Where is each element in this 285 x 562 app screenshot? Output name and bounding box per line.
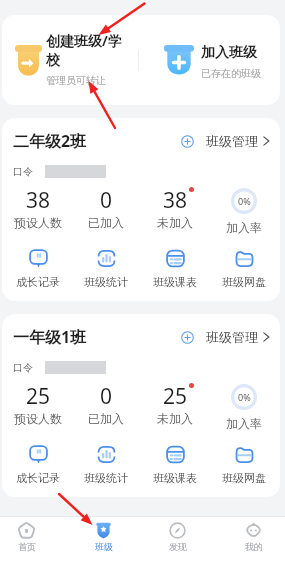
staticText: 班级统计 xyxy=(84,275,128,289)
staticText: 已加入 xyxy=(88,411,124,426)
staticText: 班级管理 xyxy=(206,329,258,345)
button[interactable]: 创建班级/学校 xyxy=(2,15,138,105)
button[interactable]: 首页 xyxy=(0,517,56,562)
staticText: 班级管理 xyxy=(206,133,258,149)
staticText: 加入率 xyxy=(226,416,262,431)
staticText: 口令 xyxy=(13,165,33,178)
staticText: 未加入 xyxy=(157,215,193,230)
staticText: 0 xyxy=(100,382,113,411)
staticText: 38 xyxy=(26,186,51,215)
staticText: 预设人数 xyxy=(14,215,62,230)
staticText: 加入率 xyxy=(226,220,262,235)
button[interactable]: 班级课表 xyxy=(140,444,209,485)
staticText: 38 xyxy=(163,186,188,215)
button[interactable]: 班级网盘 xyxy=(209,248,278,289)
button[interactable]: 成长记录 xyxy=(4,248,72,289)
button[interactable]: 班级课表 xyxy=(140,248,209,289)
staticText: 成长记录 xyxy=(16,275,60,289)
staticText: 班级统计 xyxy=(84,471,128,485)
staticText: 已加入 xyxy=(88,215,124,230)
staticText: 0 xyxy=(100,186,113,215)
staticText: 首页 xyxy=(18,541,36,552)
staticText: 一年级1班 xyxy=(13,326,87,348)
button[interactable]: 班级 xyxy=(73,517,133,562)
staticText: 未加入 xyxy=(157,411,193,426)
staticText: 班级 xyxy=(95,541,113,552)
button[interactable]: 成长记录 xyxy=(4,444,72,485)
button[interactable]: 班级管理 xyxy=(181,329,272,345)
button[interactable]: 班级网盘 xyxy=(209,444,278,485)
staticText: 发现 xyxy=(169,541,187,552)
staticText: 已存在的班级 xyxy=(201,67,261,80)
staticText: 班级网盘 xyxy=(222,471,266,485)
staticText: 成长记录 xyxy=(16,471,60,485)
button[interactable]: 班级统计 xyxy=(72,248,140,289)
staticText: 二年级2班 xyxy=(13,130,87,152)
staticText: 25 xyxy=(26,382,51,411)
staticText: 班级网盘 xyxy=(222,275,266,289)
button[interactable]: 加入班级 xyxy=(139,15,280,105)
staticText: 0% xyxy=(238,391,251,403)
staticText: 班级课表 xyxy=(153,275,197,289)
staticText: 班级课表 xyxy=(153,471,197,485)
staticText: 25 xyxy=(163,382,188,411)
staticText: 0% xyxy=(238,195,251,207)
staticText: 创建班级/学校 xyxy=(46,31,126,69)
staticText: 管理员可转让 xyxy=(46,74,106,87)
staticText: 加入班级 xyxy=(201,44,257,62)
staticText: 预设人数 xyxy=(14,411,62,426)
button[interactable]: 班级管理 xyxy=(181,133,272,149)
button[interactable]: 我的 xyxy=(223,517,283,562)
button[interactable]: 发现 xyxy=(147,517,207,562)
button[interactable]: 班级统计 xyxy=(72,444,140,485)
staticText: 我的 xyxy=(245,541,263,552)
staticText: 口令 xyxy=(13,361,33,374)
